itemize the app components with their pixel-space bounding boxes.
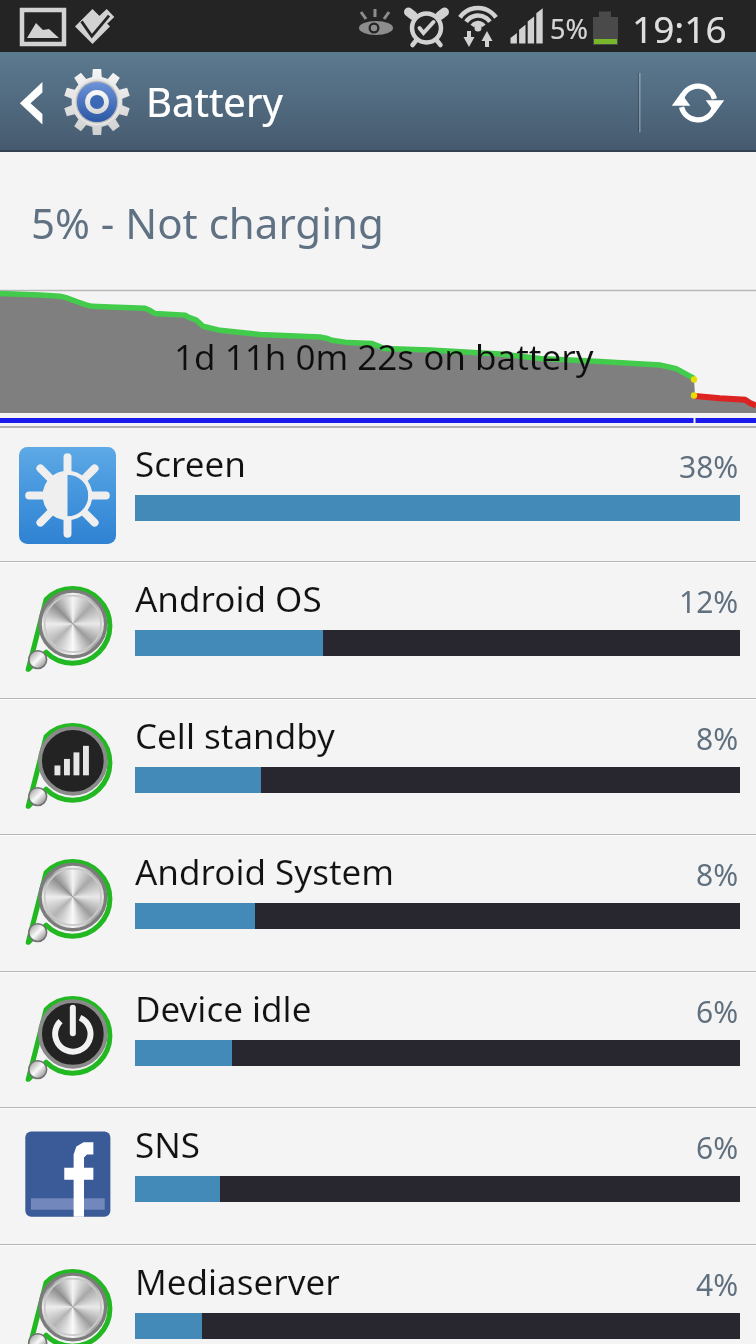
staticText: 8% <box>696 854 739 895</box>
staticText: Screen <box>135 440 246 488</box>
staticText: Battery <box>146 74 283 128</box>
staticText: 19:16 <box>632 3 727 53</box>
staticText: 5% - Not charging <box>31 194 384 251</box>
staticText: Mediaserver <box>135 1258 340 1306</box>
button[interactable]: Mediaserver <box>0 1246 756 1344</box>
staticText: Device idle <box>135 985 312 1033</box>
button[interactable]: Android System <box>0 836 756 971</box>
button[interactable]: Device idle <box>0 973 756 1107</box>
staticText: 38% <box>679 446 739 487</box>
button[interactable]: Cell standby <box>0 700 756 834</box>
staticText: 1d 11h 0m 22s on battery <box>174 333 594 381</box>
staticText: 5% <box>550 10 588 47</box>
staticText: 4% <box>696 1264 739 1305</box>
staticText: SNS <box>135 1121 201 1169</box>
staticText: 6% <box>696 1127 739 1168</box>
staticText: Cell standby <box>135 712 335 760</box>
button[interactable]: Android OS <box>0 563 756 698</box>
staticText: Android System <box>135 848 395 896</box>
button[interactable]: Navigate up, Battery settings <box>0 52 138 152</box>
staticText: 8% <box>696 718 739 759</box>
staticText: Android OS <box>135 575 322 623</box>
button[interactable]: Refresh <box>638 52 756 152</box>
staticText: 12% <box>679 581 739 622</box>
button[interactable]: SNS <box>0 1109 756 1244</box>
button[interactable]: Screen <box>0 428 756 561</box>
staticText: 6% <box>696 991 739 1032</box>
